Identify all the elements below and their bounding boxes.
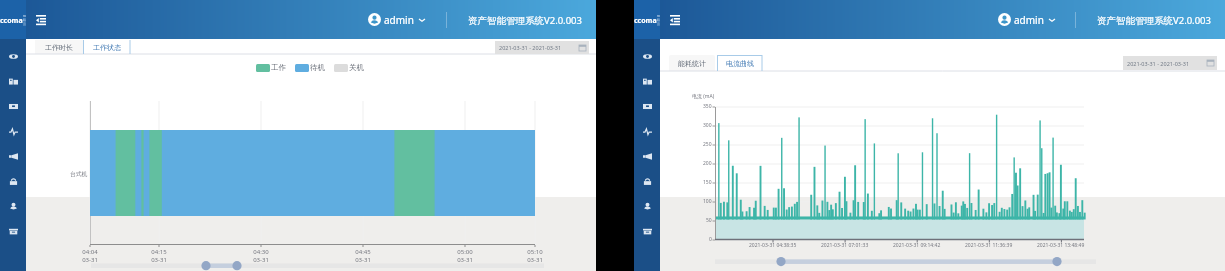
staticText: 03-31 [253,256,269,264]
staticText: 工作状态 [93,43,121,52]
button[interactable]: Monitor [0,119,26,144]
button[interactable]: Users [634,194,660,219]
button[interactable]: 能耗统计 [669,55,715,71]
staticText: 300 [703,122,712,129]
button[interactable]: admin [368,0,425,39]
button[interactable]: admin [998,0,1055,39]
button[interactable]: Inventory [634,94,660,119]
button[interactable]: Archive [0,219,26,244]
staticText: 04:04 [82,248,98,256]
staticText: admin [384,13,414,27]
staticText: 0 [709,236,712,243]
staticText: 04:30 [253,248,269,256]
staticText: 50 [706,217,712,224]
button[interactable]: 关机 [334,63,364,72]
staticText: ccoma [634,16,657,26]
staticText: 资产智能管理系统V2.0.003 [468,14,582,27]
staticText: 04:15 [151,248,167,256]
button[interactable]: Archive [634,219,660,244]
staticText: 100 [703,198,712,205]
button[interactable]: Collapse menu [33,0,49,39]
button[interactable]: 工作时长 [35,40,83,54]
button[interactable]: 2021-03-31 - 2021-03-31 [1123,56,1217,70]
button[interactable]: Monitor [634,119,660,144]
staticText: 250 [703,141,712,148]
button[interactable]: 待机 [295,63,325,72]
staticText: 关机 [349,63,364,72]
staticText: 物联云 [657,14,660,26]
staticText: 物联云 [23,14,26,26]
staticText: 03-31 [527,256,543,264]
staticText: 03-31 [82,256,98,264]
staticText: 2021-03-31 07:01:33 [821,242,869,249]
staticText: 2021-03-31 13:48:49 [1037,242,1085,249]
staticText: admin [1014,13,1044,27]
button[interactable]: Overview [0,44,26,69]
staticText: 200 [703,160,712,167]
button[interactable]: 2021-03-31 - 2021-03-31 [495,41,589,54]
staticText: ccoma [0,16,23,26]
button[interactable]: 工作 [256,63,286,72]
button[interactable]: Devices [634,69,660,94]
staticText: 03-31 [151,256,167,264]
button[interactable]: Alerts [0,144,26,169]
staticText: 工作 [271,63,286,72]
staticText: 2021-03-31 - 2021-03-31 [499,44,562,51]
staticText: 05:00 [457,248,473,256]
staticText: 03-31 [457,256,473,264]
staticText: 2021-03-31 11:36:39 [965,242,1013,249]
staticText: 电流曲线 [726,59,754,68]
button[interactable]: Security [634,169,660,194]
staticText: 工作时长 [45,43,73,52]
button[interactable]: Overview [634,44,660,69]
staticText: 04:45 [355,248,371,256]
staticText: 03-31 [355,256,371,264]
staticText: 2021-03-31 - 2021-03-31 [1127,60,1190,67]
button[interactable]: Security [0,169,26,194]
button[interactable]: 工作状态 [83,40,130,54]
staticText: 05:10 [527,248,543,256]
staticText: 待机 [310,63,325,72]
staticText: 2021-03-31 09:14:42 [893,242,941,249]
button[interactable]: Inventory [0,94,26,119]
staticText: 电流 (mA) [692,93,715,100]
button[interactable]: Alerts [634,144,660,169]
staticText: 资产智能管理系统V2.0.003 [1097,14,1211,27]
staticText: 台式机 [70,170,88,177]
staticText: 2021-03-31 04:38:35 [749,242,797,249]
button[interactable]: Devices [0,69,26,94]
button[interactable]: Users [0,194,26,219]
staticText: 350 [703,103,712,110]
button[interactable]: Collapse menu [667,0,683,39]
button[interactable]: 电流曲线 [717,55,762,71]
staticText: 150 [703,179,712,186]
staticText: 能耗统计 [678,59,706,68]
